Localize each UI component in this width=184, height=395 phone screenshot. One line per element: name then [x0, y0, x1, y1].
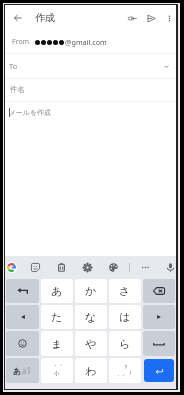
button[interactable]: あ [41, 279, 73, 303]
staticText: は [119, 310, 131, 324]
button[interactable]: は [109, 305, 141, 329]
staticText: あ [13, 366, 22, 376]
button[interactable]: Cursor right [143, 305, 175, 329]
button[interactable]: Emoji [26, 258, 44, 276]
button[interactable]: ら [109, 331, 141, 356]
staticText: か [85, 284, 97, 298]
button[interactable]: From [5, 30, 176, 53]
button[interactable]: To [5, 54, 176, 78]
button[interactable]: さ [109, 279, 141, 303]
button[interactable]: ま [41, 331, 73, 356]
staticText: 件名 [10, 85, 26, 95]
button[interactable]: Punctuation [109, 358, 141, 383]
button[interactable]: Google [2, 258, 20, 276]
button[interactable]: Clipboard [52, 258, 70, 276]
button[interactable]: Undo [6, 279, 39, 303]
staticText: あ [51, 284, 63, 298]
button[interactable]: Attach file [123, 9, 141, 27]
button[interactable]: た [41, 305, 73, 329]
button[interactable]: More [136, 258, 154, 276]
button[interactable]: Enter [144, 359, 174, 382]
staticText: や [85, 337, 97, 351]
button[interactable]: Send [142, 9, 160, 27]
button[interactable]: Themes [104, 258, 122, 276]
staticText: た [51, 310, 63, 324]
button[interactable]: Back [9, 9, 27, 27]
staticText: ま [51, 337, 63, 351]
staticText: ら [119, 337, 131, 351]
button[interactable]: メールを作成 [5, 102, 176, 256]
button[interactable]: Emoji [6, 331, 39, 356]
staticText: ゛゜ [51, 364, 63, 371]
button[interactable]: Space [143, 331, 175, 356]
staticText: な [85, 310, 97, 324]
button[interactable]: や [75, 331, 107, 356]
staticText: 小 [54, 370, 60, 377]
button[interactable]: Voice input [161, 258, 179, 276]
staticText: わ [85, 364, 97, 378]
button[interactable]: な [75, 305, 107, 329]
button[interactable]: あ [6, 358, 39, 383]
button[interactable]: More options [160, 9, 178, 27]
button[interactable]: Dakuten [41, 358, 73, 383]
button[interactable]: Expand recipients [159, 59, 173, 73]
staticText: さ [119, 284, 131, 298]
staticText: To [9, 61, 18, 71]
staticText: @gmail.com [65, 37, 107, 47]
staticText: a1 [22, 365, 32, 376]
staticText: 作成 [35, 11, 55, 24]
staticText: From [12, 37, 30, 47]
button[interactable]: Settings [78, 258, 96, 276]
button[interactable]: か [75, 279, 107, 303]
button[interactable]: Cursor left [6, 305, 39, 329]
staticText: メールを作成 [9, 108, 51, 117]
staticText: ？ [123, 364, 129, 371]
staticText: 、。！ [117, 370, 134, 377]
button[interactable]: 件名 [5, 79, 176, 101]
button[interactable]: Backspace [143, 279, 175, 303]
button[interactable]: わ [75, 358, 107, 383]
